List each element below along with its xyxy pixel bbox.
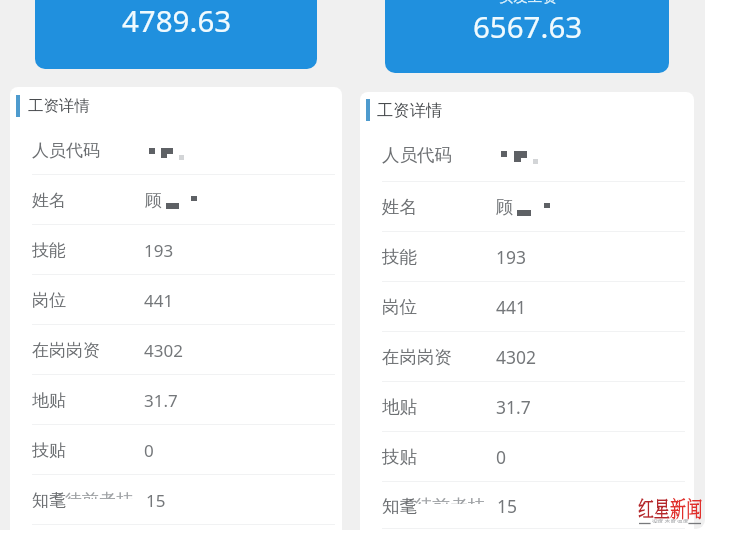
staticText: 顾: [496, 196, 514, 218]
staticText: 4789.63: [122, 0, 232, 40]
staticText: 技能: [32, 240, 66, 261]
button[interactable]: 技能: [10, 225, 342, 275]
staticText: 待前者挂: [415, 496, 485, 504]
staticText: 人员代码: [382, 144, 452, 166]
staticText: 15: [497, 494, 518, 518]
staticText: 地贴: [382, 396, 417, 418]
staticText: 0: [144, 439, 154, 462]
button[interactable]: 知耄: [10, 475, 342, 525]
button[interactable]: 地贴: [360, 382, 694, 432]
staticText: 4302: [144, 339, 183, 362]
button[interactable]: 知耄: [360, 482, 694, 529]
staticText: 技能: [382, 246, 417, 268]
staticText: 工资详情: [377, 100, 443, 121]
staticText: 姓名: [382, 196, 417, 218]
staticText: 193: [144, 239, 174, 262]
staticText: 人员代码: [32, 140, 100, 161]
staticText: 红星: [638, 492, 670, 523]
button[interactable]: 姓名: [10, 175, 342, 225]
staticText: 工资详情: [28, 96, 90, 116]
staticText: 地贴: [32, 390, 66, 411]
staticText: 待前者挂: [65, 491, 133, 499]
button[interactable]: 地贴: [10, 375, 342, 425]
staticText: 岗位: [32, 290, 66, 311]
button[interactable]: 4789.63: [35, 0, 317, 69]
staticText: 441: [144, 289, 174, 312]
button[interactable]: 技贴: [10, 425, 342, 475]
staticText: 4302: [496, 345, 537, 369]
staticText: 顾: [145, 190, 162, 211]
staticText: 31.7: [144, 389, 178, 412]
button[interactable]: 实发工资: [385, 0, 669, 73]
staticText: 岗位: [382, 296, 417, 318]
staticText: 知耄: [382, 495, 417, 517]
staticText: 31.7: [496, 395, 531, 419]
staticText: 在岗岗资: [382, 346, 452, 368]
staticText: 15: [146, 489, 166, 512]
button[interactable]: 姓名: [360, 182, 694, 232]
staticText: 知耄: [32, 490, 66, 511]
button[interactable]: 岗位: [10, 275, 342, 325]
button[interactable]: 技贴: [360, 432, 694, 482]
staticText: 姓名: [32, 190, 66, 211]
staticText: 技贴: [382, 446, 417, 468]
staticText: 深度 态度 温度: [652, 518, 689, 523]
staticText: 技贴: [32, 440, 66, 461]
button[interactable]: 在岗岗资: [360, 332, 694, 382]
button[interactable]: 岗位: [360, 282, 694, 332]
staticText: 441: [496, 295, 527, 319]
staticText: 0: [496, 445, 507, 469]
staticText: 新闻: [670, 492, 702, 523]
button[interactable]: 技能: [360, 232, 694, 282]
button[interactable]: 在岗岗资: [10, 325, 342, 375]
staticText: 193: [496, 245, 527, 269]
staticText: 实发工资: [499, 0, 557, 6]
staticText: 6567.63: [473, 6, 583, 46]
staticText: 在岗岗资: [32, 340, 100, 361]
button[interactable]: 人员代码: [360, 132, 694, 182]
button[interactable]: 人员代码: [10, 125, 342, 175]
